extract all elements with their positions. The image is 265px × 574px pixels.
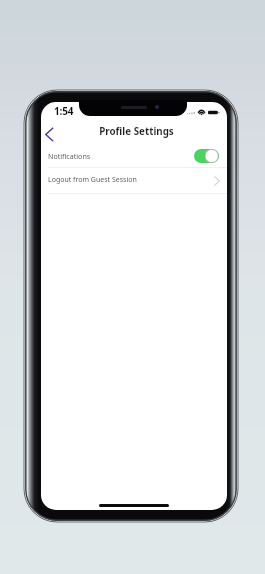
staticText: Logout from Guest Session xyxy=(48,175,137,185)
button[interactable]: Logout from Guest Session xyxy=(41,168,227,194)
staticText: 1:54 xyxy=(54,104,74,118)
button[interactable]: Notifications xyxy=(41,145,227,168)
button[interactable]: Back xyxy=(41,121,60,147)
staticText: Notifications xyxy=(48,151,91,161)
staticText: Profile Settings xyxy=(99,125,174,138)
